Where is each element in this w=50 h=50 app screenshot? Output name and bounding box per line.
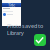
staticText: Title: [8, 2, 15, 8]
staticText: Photo saved to Library: [7, 22, 43, 37]
